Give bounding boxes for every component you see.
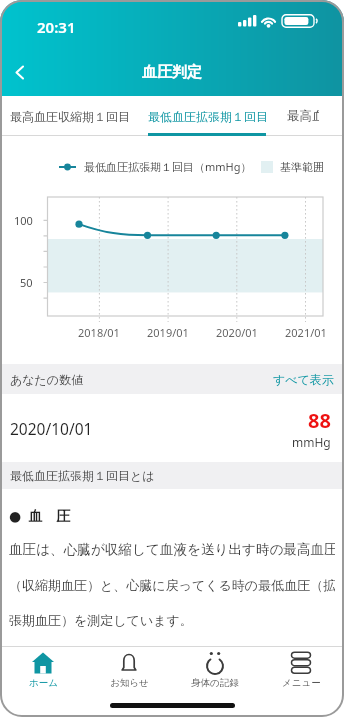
staticText: 基準範囲 — [280, 160, 324, 174]
staticText: 最高血圧 — [287, 108, 319, 124]
staticText: 身体の記録 — [191, 677, 239, 689]
button[interactable] — [4, 56, 36, 88]
staticText: ホーム — [29, 677, 58, 689]
staticText: 88 — [308, 407, 331, 434]
button[interactable]: 2020/10/01 — [0, 394, 344, 462]
button[interactable]: 最低血圧拡張期１回目 — [144, 105, 272, 128]
staticText: すべて表示 — [273, 372, 334, 387]
button[interactable]: すべて表示 — [273, 372, 334, 387]
staticText: 2020/10/01 — [10, 418, 93, 439]
staticText: お知らせ — [110, 677, 149, 689]
staticText: 最低血圧拡張期１回目とは — [10, 468, 155, 483]
staticText: ● 血 圧 — [9, 506, 71, 525]
staticText: あなたの数値 — [10, 372, 84, 387]
staticText: 2021/01 — [285, 325, 327, 340]
staticText: 最低血圧拡張期１回目（mmHg） — [84, 159, 252, 174]
staticText: 血圧は、心臓が収縮して血液を送り出す時の最高血圧 — [9, 541, 335, 558]
button[interactable]: 最高血圧 — [287, 108, 319, 124]
button[interactable]: ホーム — [0, 647, 86, 717]
button[interactable]: お知らせ — [86, 647, 172, 717]
staticText: 50 — [20, 275, 33, 290]
staticText: メニュー — [282, 677, 321, 689]
staticText: 2019/01 — [147, 325, 189, 340]
staticText: 2018/01 — [78, 325, 120, 340]
button[interactable]: 最高血圧収縮期１回目 — [6, 105, 134, 128]
staticText: 最高血圧収縮期１回目 — [10, 109, 130, 124]
staticText: mmHg — [292, 434, 331, 450]
staticText: 血圧判定 — [142, 63, 202, 82]
staticText: （収縮期血圧）と、心臓に戻ってくる時の最低血圧（拡 — [9, 577, 335, 593]
staticText: 最低血圧拡張期１回目 — [148, 109, 268, 124]
button[interactable]: 身体の記録 — [172, 647, 258, 717]
staticText: 20:31 — [37, 17, 76, 37]
staticText: 張期血圧）を測定しています。 — [9, 612, 193, 628]
staticText: 100 — [14, 213, 33, 228]
button[interactable]: メニュー — [258, 647, 344, 717]
staticText: 2020/01 — [216, 325, 258, 340]
